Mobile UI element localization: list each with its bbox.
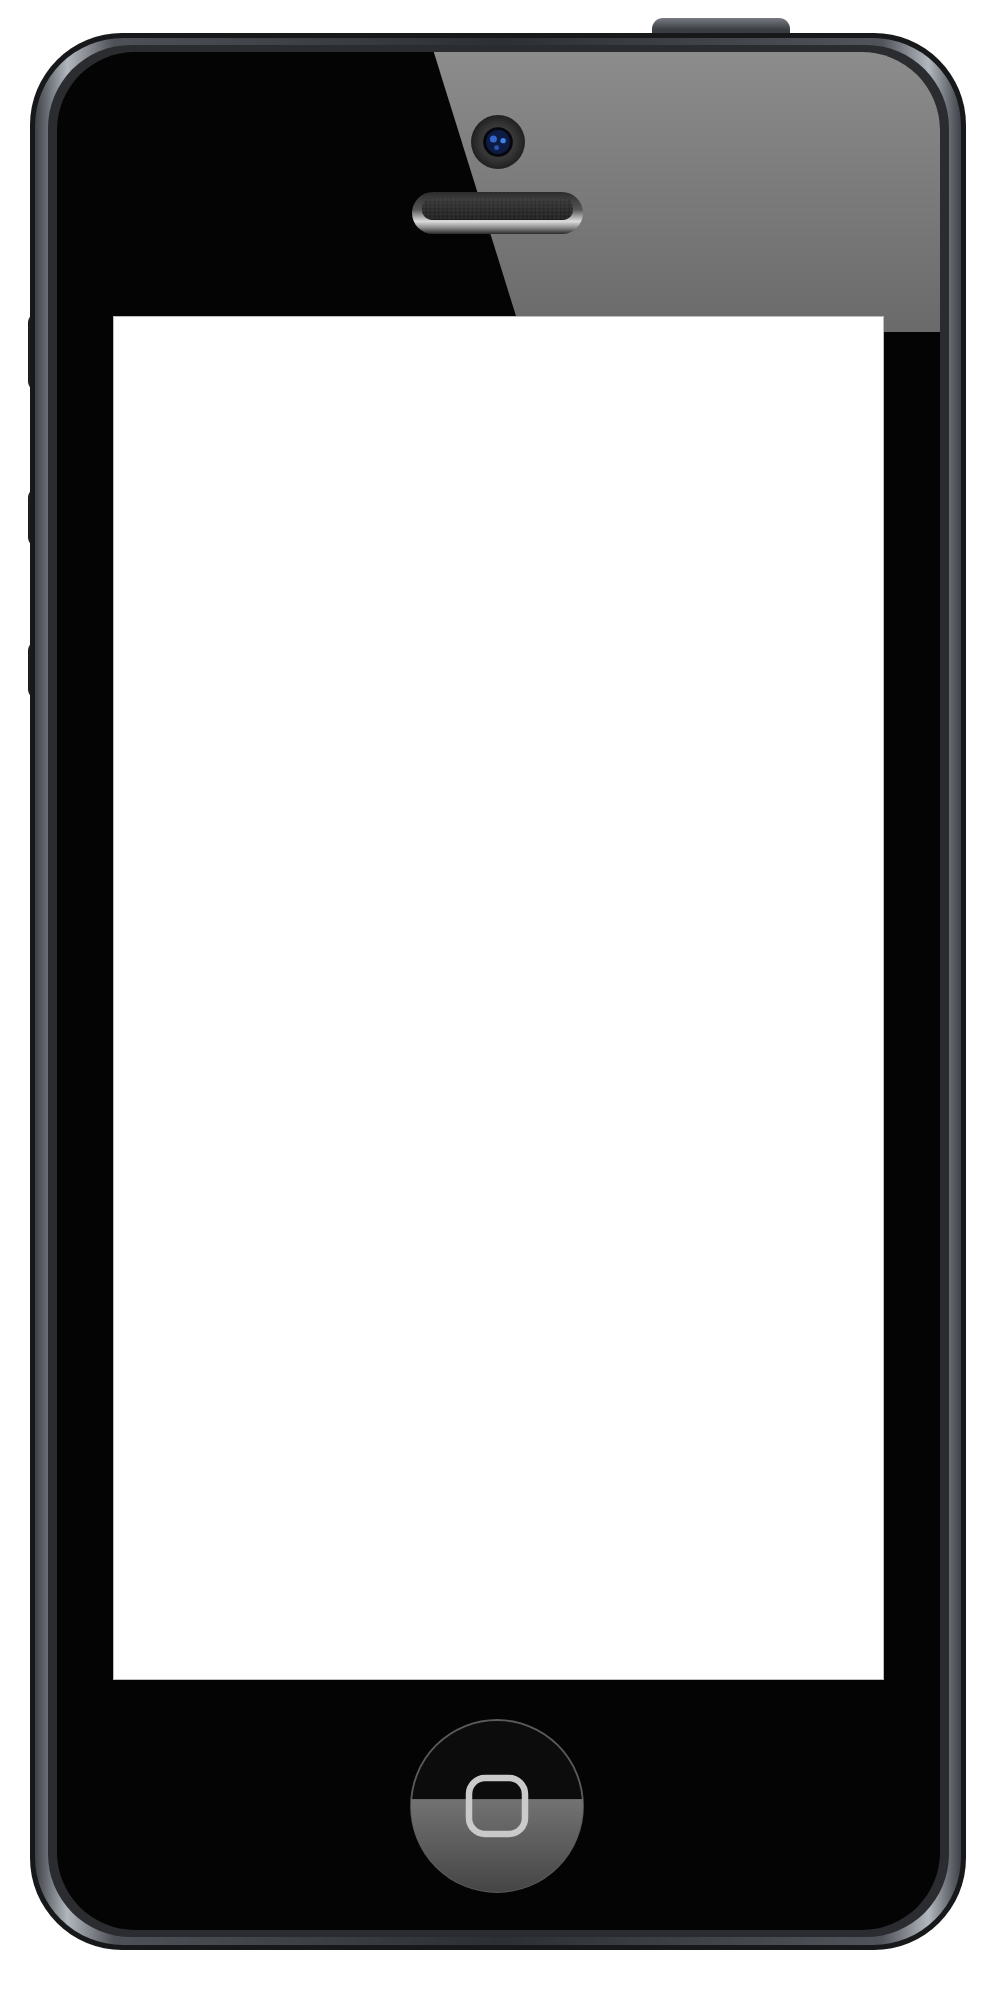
button[interactable]: Smartphone device mockup with blank scre… — [0, 0, 999, 2006]
